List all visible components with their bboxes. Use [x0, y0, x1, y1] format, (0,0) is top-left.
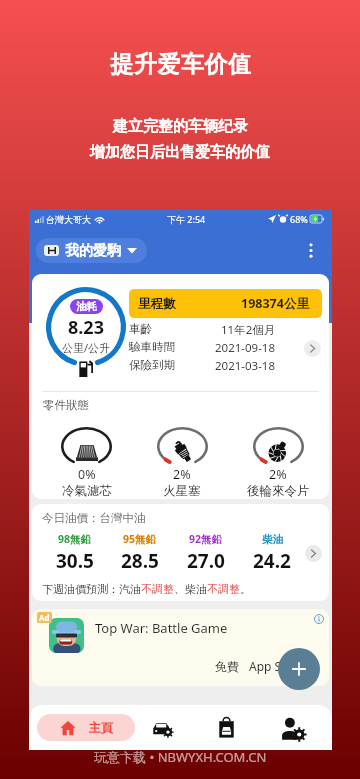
staticText: 公里/公升 — [62, 340, 111, 355]
staticText: 8.23 — [68, 315, 104, 340]
staticText: 68% — [290, 213, 308, 225]
button[interactable]: 我的愛駒 — [36, 238, 147, 263]
button[interactable]: 今日油價：台灣中油 — [32, 504, 329, 601]
staticText: 92無鉛 — [189, 532, 223, 546]
staticText: 不調整 — [207, 582, 240, 596]
staticText: 30.5 — [56, 548, 94, 574]
button[interactable]: 2% — [134, 427, 230, 499]
button[interactable]: 油耗 — [32, 274, 329, 499]
staticText: 2021-03-18 — [215, 358, 276, 374]
staticText: 油耗 — [76, 300, 97, 313]
button[interactable]: Car service — [135, 705, 189, 750]
staticText: 零件狀態 — [43, 398, 89, 412]
staticText: 0% — [78, 466, 96, 483]
staticText: 增加您日后出售爱车的价值 — [90, 143, 270, 162]
staticText: 車齡 — [129, 322, 152, 336]
button[interactable]: Shop — [189, 705, 257, 750]
staticText: 98無鉛 — [58, 532, 92, 546]
staticText: 、柴油 — [174, 582, 207, 596]
staticText: 驗車時間 — [129, 340, 175, 354]
button[interactable]: Top War: Battle Game — [32, 609, 329, 686]
button[interactable]: More fuel prices — [305, 545, 322, 562]
staticText: 95無鉛 — [123, 532, 157, 546]
staticText: 不調整 — [141, 582, 174, 596]
staticText: 冷氣濾芯 — [62, 483, 112, 499]
staticText: 198374公里 — [241, 295, 309, 312]
staticText: 免費 — [215, 659, 239, 674]
button[interactable]: 2% — [230, 427, 326, 499]
staticText: Ad — [39, 612, 50, 623]
staticText: 2021-09-18 — [215, 340, 276, 356]
staticText: 下週油價預測：汽油 — [42, 582, 141, 596]
other: Home — [60, 720, 76, 736]
staticText: 我的愛駒 — [65, 242, 121, 260]
staticText: 火星塞 — [163, 483, 201, 499]
staticText: 今日油價：台灣中油 — [42, 511, 146, 525]
other: Ad info — [314, 614, 324, 624]
staticText: 24.2 — [253, 548, 291, 574]
button[interactable]: More options — [298, 237, 324, 263]
staticText: 下午 2:54 — [167, 213, 206, 225]
staticText: 。 — [240, 582, 251, 596]
staticText: 台灣大哥大 — [46, 214, 91, 225]
staticText: 28.5 — [121, 548, 159, 574]
staticText: 提升爱车价值 — [110, 50, 251, 79]
staticText: 後輪來令片 — [247, 483, 310, 499]
staticText: 11年2個月 — [221, 322, 276, 338]
button[interactable]: Home — [37, 714, 135, 741]
staticText: 建立完整的车辆纪录 — [113, 117, 248, 136]
button[interactable]: Add — [278, 648, 320, 690]
staticText: 柴油 — [262, 533, 283, 546]
staticText: 玩意卞载 • NBWYXH.COM.CN — [94, 748, 267, 766]
staticText: 2% — [173, 466, 191, 483]
button[interactable]: Details — [304, 340, 321, 357]
staticText: 里程數 — [138, 296, 176, 312]
staticText: Top War: Battle Game — [95, 619, 228, 637]
staticText: 保險到期 — [129, 358, 175, 372]
staticText: 27.0 — [187, 548, 225, 574]
staticText: 主頁 — [89, 720, 113, 735]
button[interactable]: Account settings — [257, 705, 332, 750]
staticText: 2% — [269, 466, 287, 483]
staticText: App Store — [249, 658, 305, 674]
button[interactable]: 0% — [39, 427, 134, 499]
